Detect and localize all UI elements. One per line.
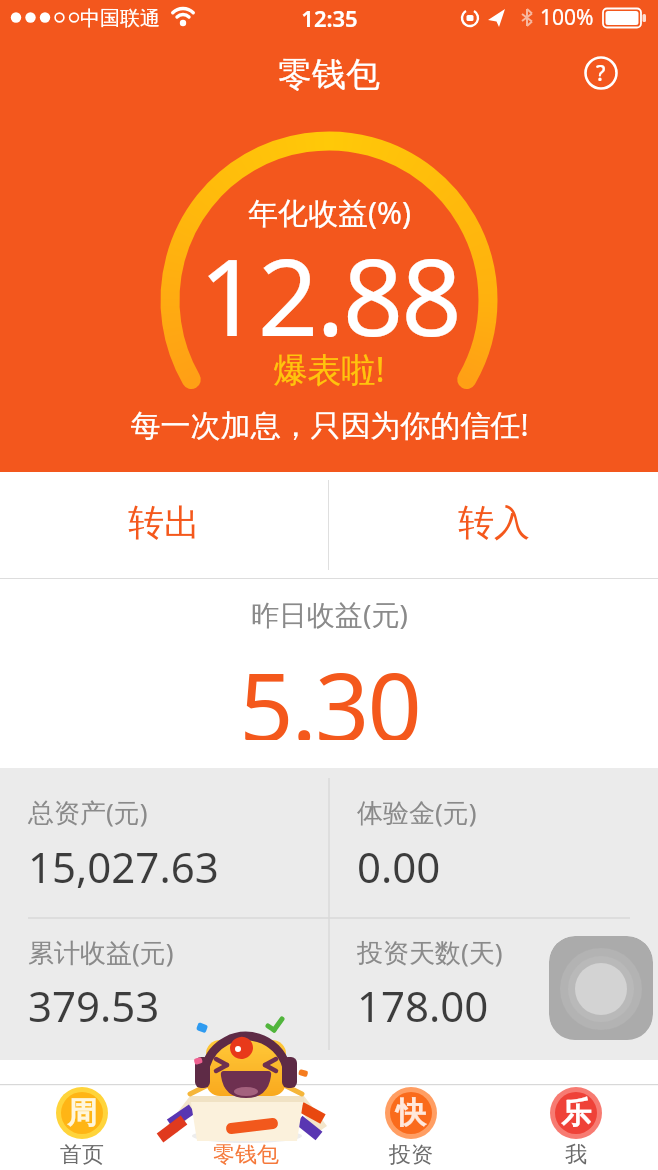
button[interactable]: 乐 [493,1084,658,1170]
staticText: 年化收益(%) [248,192,411,233]
staticText: ? [596,59,606,88]
button[interactable]: 快 [328,1084,493,1170]
button[interactable]: 零钱包 [164,1084,328,1170]
staticText: 总资产(元) [28,794,148,830]
staticText: 体验金(元) [357,794,477,830]
staticText: 首页 [60,1141,104,1169]
staticText: 投资天数(天) [357,934,503,970]
staticText: 爆表啦! [273,346,385,390]
staticText: 转出 [128,500,200,545]
staticText: 投资 [389,1141,433,1169]
button[interactable]: 转入 [329,472,658,578]
button[interactable]: ? [583,55,619,91]
staticText: 累计收益(元) [28,934,174,970]
staticText: 12.88 [199,223,460,339]
staticText: 每一次加息，只因为你的信任! [130,404,529,445]
staticText: 178.00 [357,977,489,1034]
staticText: 周 [67,1094,97,1132]
staticText: 5.30 [239,640,420,740]
staticText: 中国联通 [80,6,160,31]
staticText: 0.00 [357,838,441,895]
staticText: 昨日收益(元) [251,595,408,633]
button[interactable]: 周 [0,1084,164,1170]
staticText: 转入 [458,500,530,545]
staticText: 快 [396,1094,426,1132]
staticText: 379.53 [28,977,160,1034]
button[interactable] [549,936,653,1040]
staticText: 零钱包 [278,53,380,96]
button[interactable]: 转出 [0,472,328,578]
staticText: 零钱包 [213,1141,279,1169]
staticText: 100% [540,3,594,32]
staticText: 乐 [561,1094,591,1132]
staticText: 我 [565,1141,587,1169]
staticText: 12:35 [301,3,358,33]
staticText: 15,027.63 [28,838,219,895]
